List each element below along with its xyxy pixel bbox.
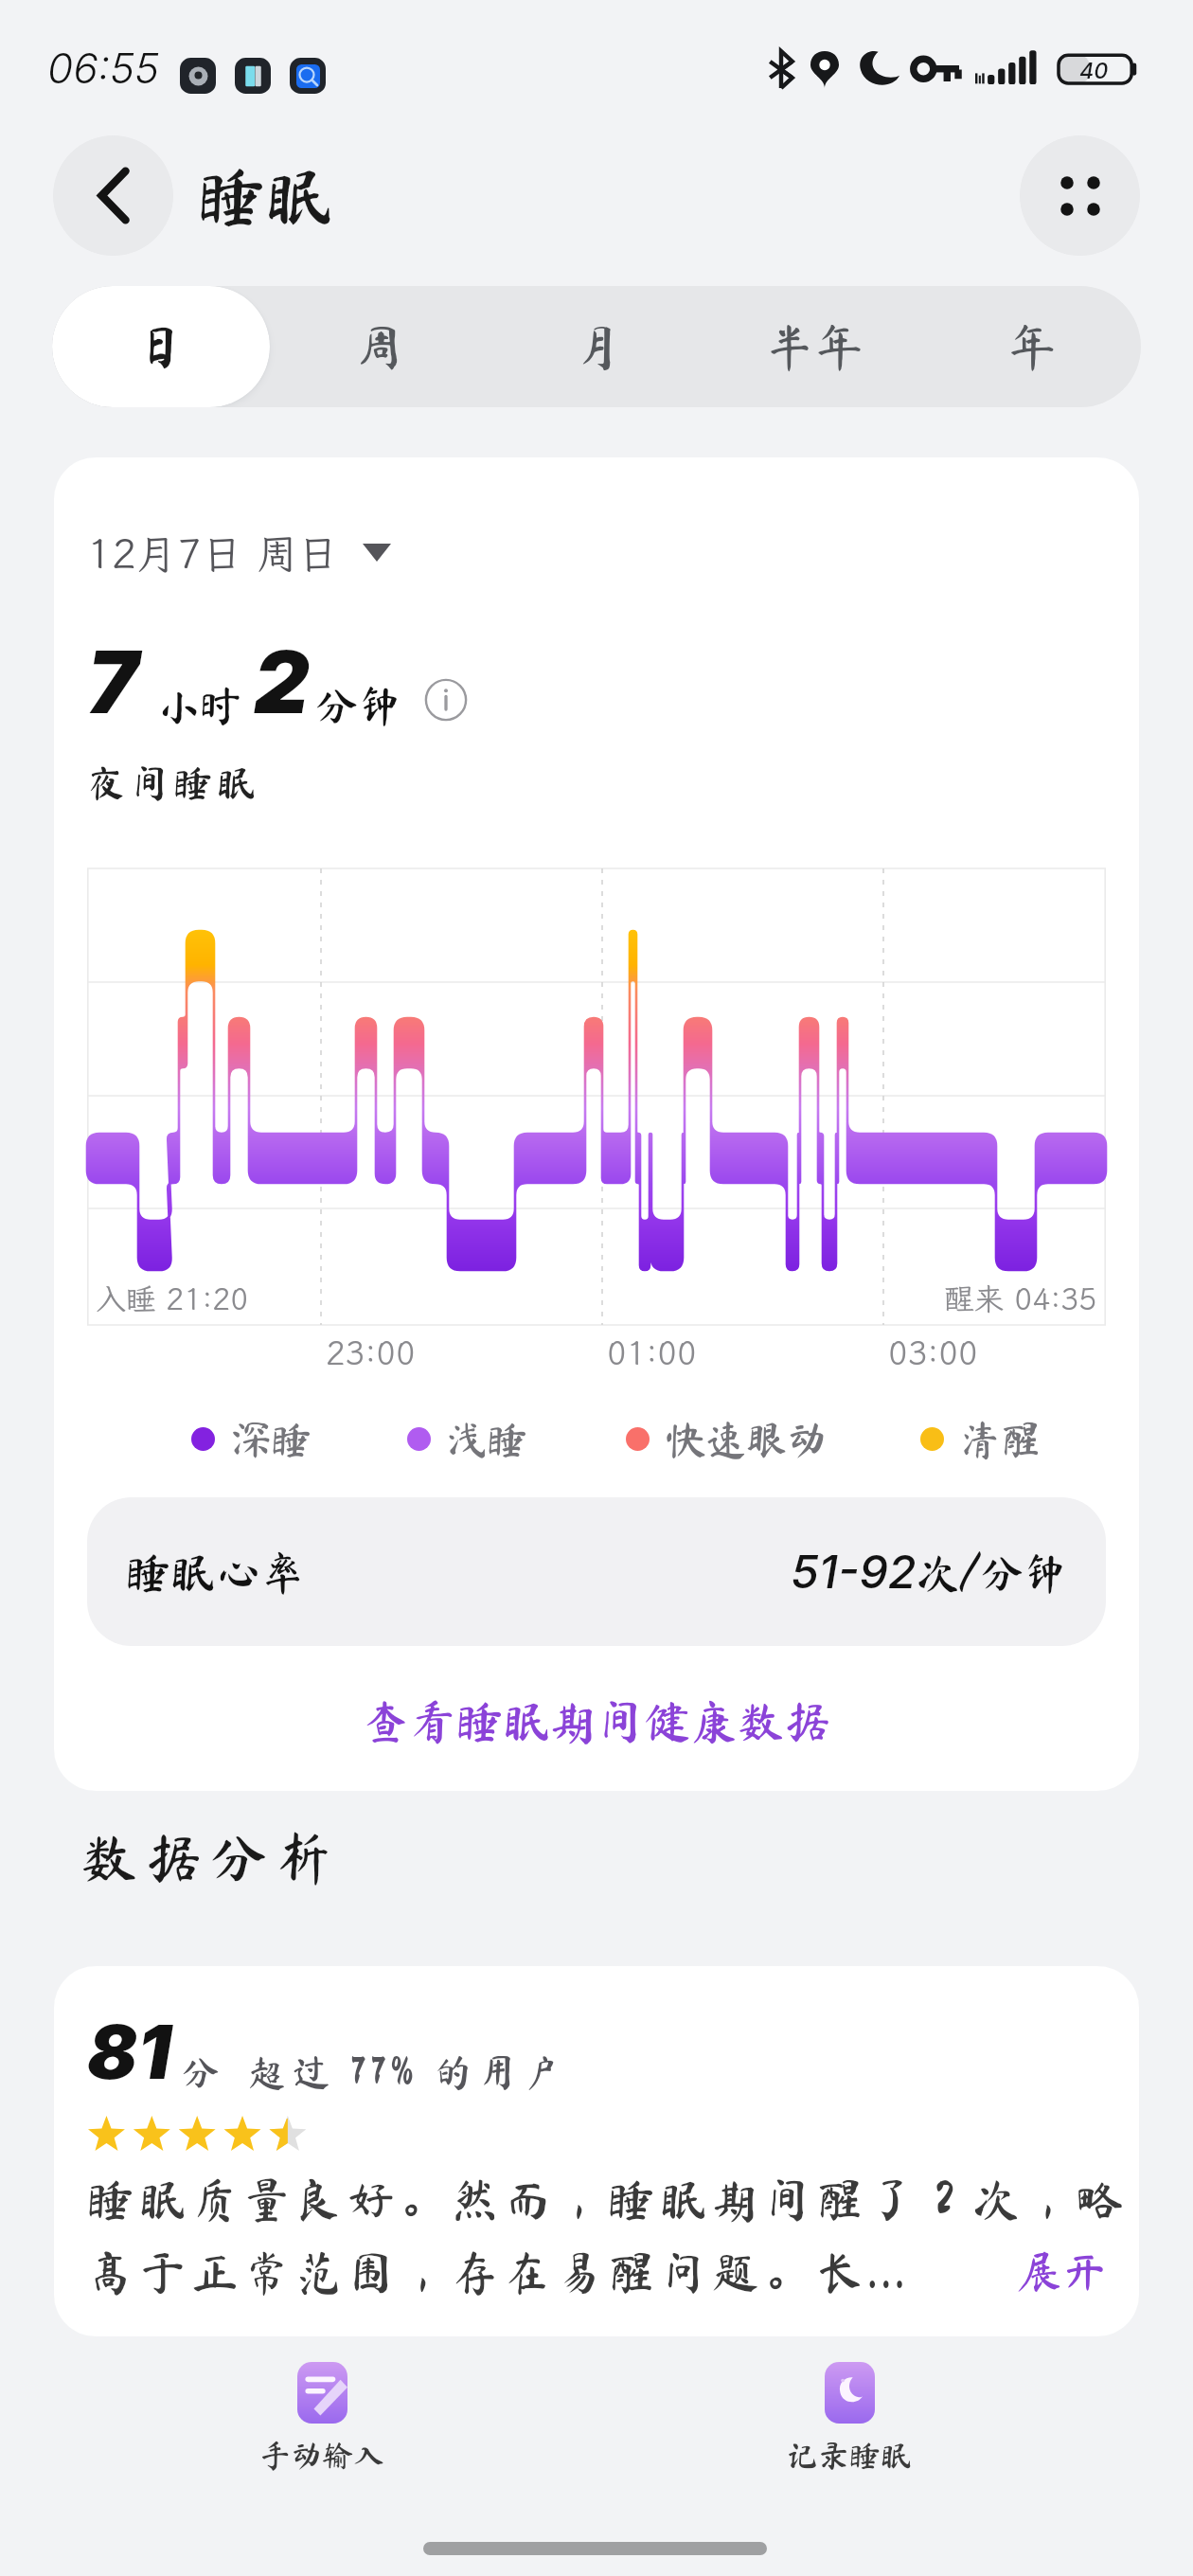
staticText: 分钟 — [315, 684, 401, 726]
button[interactable]: More options — [1020, 135, 1140, 256]
button[interactable]: Info — [425, 679, 467, 721]
button[interactable]: 12月7日 周日 — [87, 526, 391, 580]
staticText: 日 — [136, 322, 187, 371]
staticText: 03:00 — [888, 1332, 978, 1374]
staticText: 分 — [182, 2053, 220, 2091]
staticText: 清醒 — [960, 1419, 1042, 1459]
button[interactable]: 年 — [923, 286, 1141, 407]
staticText: 小时 — [156, 684, 242, 726]
button[interactable]: 记录睡眠 — [787, 2362, 912, 2471]
staticText: 深睡 — [231, 1419, 312, 1459]
staticText: 记录睡眠 — [787, 2440, 912, 2471]
staticText: 查看睡眠期间健康数据 — [363, 1697, 831, 1744]
button[interactable]: 手动输入 — [259, 2362, 384, 2471]
staticText: 23:00 — [326, 1332, 416, 1374]
staticText: 40 — [1079, 57, 1109, 83]
staticText: 醒来 04:35 — [944, 1279, 1097, 1318]
staticText: 06:55 — [47, 43, 160, 93]
staticText: 夜间睡眠 — [87, 763, 260, 802]
staticText: 01:00 — [607, 1332, 697, 1374]
staticText: 入睡 21:20 — [96, 1279, 249, 1318]
staticText: 月 — [572, 322, 622, 371]
button[interactable]: 日 — [52, 286, 270, 407]
staticText: 手动输入 — [259, 2440, 384, 2471]
staticText: 年 — [1007, 322, 1058, 371]
button[interactable]: 周 — [270, 286, 488, 407]
staticText: 半年 — [765, 322, 864, 371]
staticText: 快速眼动 — [666, 1419, 828, 1459]
staticText: 数据分析 — [80, 1829, 340, 1886]
button[interactable]: Back — [53, 135, 173, 256]
button[interactable]: 展开 — [1017, 2248, 1106, 2293]
staticText: 浅睡 — [447, 1419, 528, 1459]
staticText: 2 — [254, 630, 310, 734]
staticText: 睡眠 — [198, 162, 334, 229]
staticText: 81 — [87, 2007, 171, 2097]
staticText: 睡眠心率 — [126, 1549, 306, 1594]
button[interactable]: 半年 — [705, 286, 923, 407]
staticText: 7 — [87, 630, 138, 734]
staticText: 睡眠质量良好。然而，睡眠期间醒了 2 次，略 — [87, 2175, 1130, 2223]
staticText: 次/分钟 — [917, 1551, 1067, 1594]
button[interactable]: 查看睡眠期间健康数据 — [87, 1684, 1106, 1758]
staticText: 高于正常范围，存在易醒问题。长... — [87, 2248, 910, 2296]
button[interactable]: 睡眠心率 — [87, 1497, 1106, 1646]
staticText: 超过 77% 的用户 — [248, 2053, 567, 2091]
staticText: 12月7日 周日 — [87, 526, 339, 580]
staticText: 周 — [354, 322, 404, 371]
staticText: 51-92 — [791, 1544, 917, 1600]
button[interactable]: 月 — [488, 286, 705, 407]
